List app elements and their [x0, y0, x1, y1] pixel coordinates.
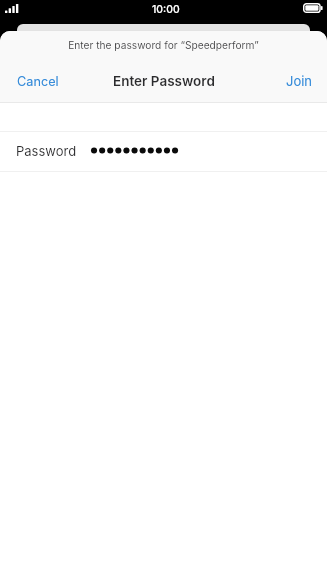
button[interactable]: Join [269, 59, 327, 101]
staticText: Join [286, 73, 313, 89]
other: Battery full [303, 3, 323, 13]
staticText: Enter the password for “Speedperform” [68, 39, 259, 51]
button[interactable]: Password [0, 132, 327, 171]
staticText: Cancel [17, 74, 59, 89]
other: Cellular signal strength [5, 4, 19, 13]
staticText: Password [16, 143, 77, 159]
button[interactable]: Cancel [0, 60, 76, 101]
staticText: Enter Password [113, 73, 215, 89]
staticText: 10:00 [152, 3, 180, 16]
